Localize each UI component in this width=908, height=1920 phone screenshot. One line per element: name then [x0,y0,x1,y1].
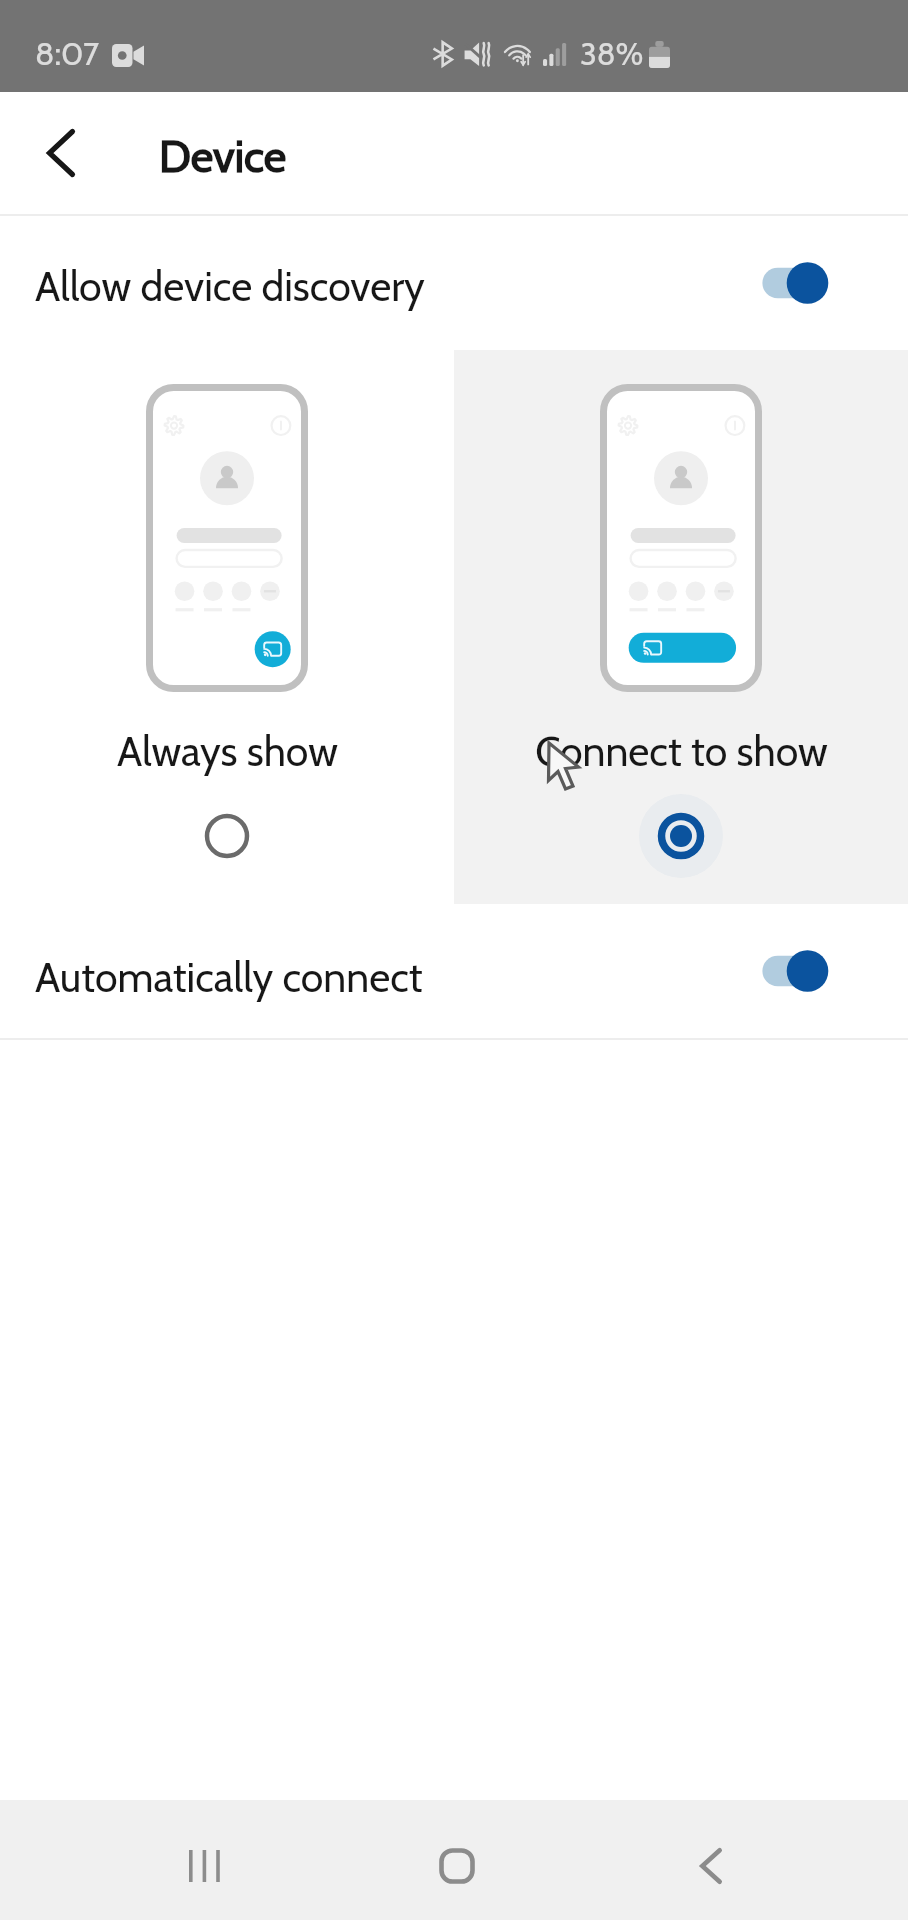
button[interactable]: Navigate up [17,109,105,197]
button[interactable]: Automatically connect [750,940,846,1002]
staticText: Allow device discovery [35,261,425,311]
button[interactable]: Automatically connect [0,904,908,1038]
staticText: 8:07 [35,34,100,73]
staticText: Device [159,130,287,183]
button[interactable]: Recent apps [134,1806,274,1920]
staticText: Connect to show [535,726,828,776]
staticText: Always show [117,726,338,776]
button[interactable]: Connect to show [454,350,908,904]
button[interactable]: Back [641,1806,781,1920]
button[interactable]: Always show [183,792,271,880]
button[interactable]: Always show [0,350,454,904]
staticText: 38% [580,35,644,73]
staticText: Automatically connect [35,952,423,1002]
button[interactable]: Connect to show [637,792,725,880]
button[interactable]: Allow device discovery [750,252,846,314]
button[interactable]: Home [387,1806,527,1920]
button[interactable]: Allow device discovery [0,216,908,350]
